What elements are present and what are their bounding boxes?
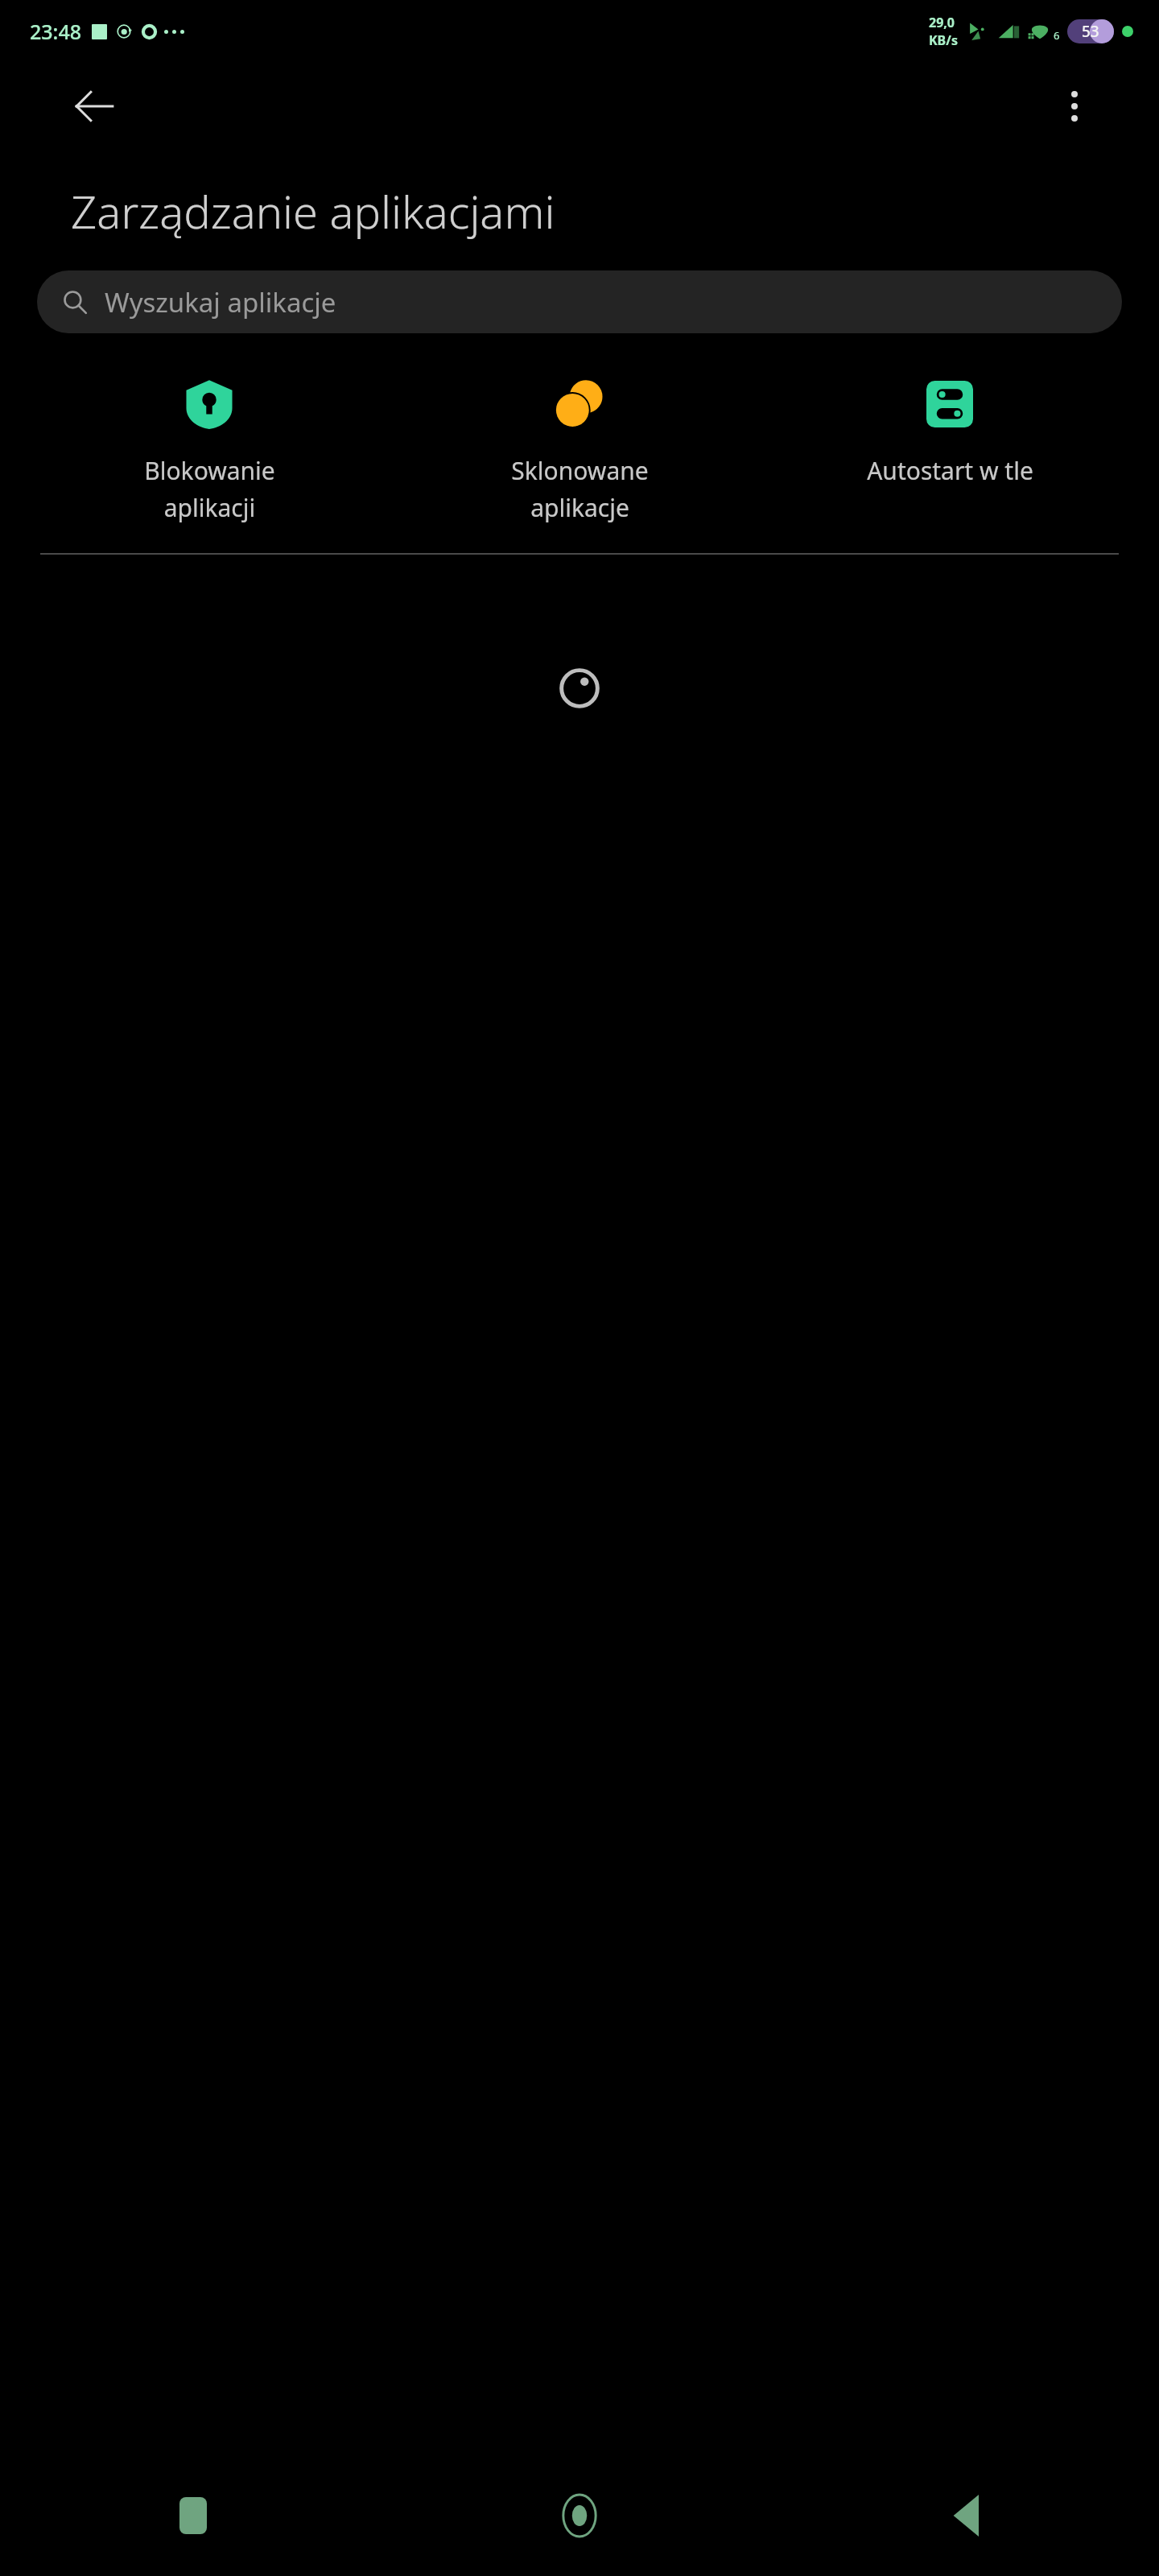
staticText: 23:48 (30, 18, 82, 45)
staticText: Zarządzanie aplikacjami (71, 180, 555, 242)
button[interactable]: Back (68, 80, 121, 133)
staticText: Autostart w tle (867, 454, 1033, 487)
button[interactable]: Autostart w tle (765, 370, 1135, 492)
button[interactable]: Recents (0, 2455, 386, 2576)
button[interactable]: Home (386, 2455, 773, 2576)
staticText: 6 (1054, 28, 1060, 43)
button[interactable]: Back (773, 2455, 1159, 2576)
button[interactable]: More options (1048, 80, 1101, 133)
button[interactable]: Wyszukaj aplikacje (37, 270, 1122, 333)
staticText: Sklonowane aplikacje (511, 454, 649, 524)
staticText: 53 (1082, 21, 1099, 42)
staticText: Blokowanie aplikacji (144, 454, 275, 524)
button[interactable]: Sklonowane aplikacje (394, 370, 765, 529)
staticText: Wyszukaj aplikacje (105, 284, 336, 320)
staticText: 29,0 (929, 14, 955, 31)
staticText: KB/s (929, 31, 958, 49)
button[interactable]: Blokowanie aplikacji (24, 370, 394, 529)
